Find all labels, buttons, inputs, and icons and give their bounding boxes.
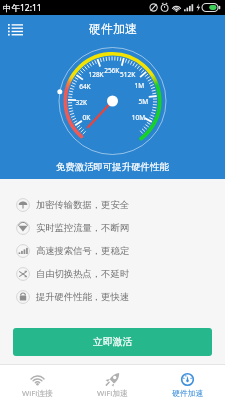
staticText: 硬件加速 [172, 388, 204, 398]
button[interactable]: WiFi连接 [0, 365, 75, 400]
button[interactable]: Menu [0, 15, 31, 42]
staticText: 硬件加速 [89, 21, 137, 36]
button[interactable]: 立即激活 [13, 328, 212, 356]
staticText: 自由切换热点，不延时 [36, 268, 129, 280]
button[interactable]: 自由切换热点，不延时 [0, 262, 225, 285]
staticText: 实时监控流量，不断网 [36, 222, 129, 234]
staticText: 提升硬件性能，更快速 [36, 291, 129, 303]
staticText: 免费激活即可提升硬件性能 [56, 161, 169, 173]
staticText: 加密传输数据，更安全 [36, 199, 129, 211]
button[interactable]: 实时监控流量，不断网 [0, 216, 225, 239]
staticText: 高速搜索信号，更稳定 [36, 245, 129, 257]
staticText: 中午12:11 [3, 2, 42, 14]
button[interactable]: 硬件加速 [150, 365, 225, 400]
button[interactable]: 高速搜索信号，更稳定 [0, 239, 225, 262]
button[interactable]: 提升硬件性能，更快速 [0, 285, 225, 308]
button[interactable]: WiFi加速 [75, 365, 150, 400]
staticText: 立即激活 [93, 336, 133, 348]
staticText: WiFi加速 [97, 388, 128, 399]
staticText: WiFi连接 [22, 388, 53, 399]
button[interactable]: 加密传输数据，更安全 [0, 193, 225, 216]
